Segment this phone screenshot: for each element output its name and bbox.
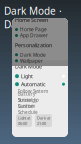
staticText: Wallpaper — [20, 57, 43, 64]
staticText: Dark Mode — [20, 51, 46, 58]
staticText: Custom Schedule — [18, 103, 38, 115]
staticText: Automatic — [21, 81, 46, 88]
staticText: Light — [21, 73, 33, 80]
staticText: Home Page — [20, 26, 47, 33]
staticText: Light at 06:00 — [18, 115, 30, 126]
staticText: Personalization — [15, 41, 52, 49]
staticText: Dark Mode · Day / Night — [4, 4, 62, 31]
staticText: Sunset to Sunrise — [18, 97, 39, 109]
staticText: Battery Strategy — [18, 91, 37, 103]
staticText: App Drawer — [20, 32, 48, 39]
staticText: Home Screen — [15, 16, 48, 23]
staticText: Follow System — [18, 88, 48, 94]
staticText: Dark Mode — [15, 63, 42, 70]
staticText: Dark at 21:00 — [37, 115, 50, 126]
